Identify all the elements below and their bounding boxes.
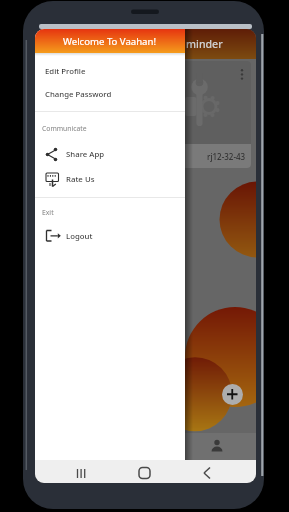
button[interactable] bbox=[202, 434, 232, 458]
staticText: rj12-32-43 bbox=[207, 151, 246, 162]
staticText: Communicate bbox=[42, 124, 87, 133]
staticText: Change Password bbox=[45, 89, 112, 100]
staticText: Welcome To Vaahan! bbox=[63, 35, 157, 48]
staticText: Rate Us bbox=[66, 174, 95, 185]
staticText: Logout bbox=[66, 231, 93, 242]
button[interactable]: Logout bbox=[35, 229, 185, 244]
staticText: minder bbox=[186, 37, 223, 51]
button[interactable] bbox=[222, 384, 243, 405]
button[interactable] bbox=[234, 61, 251, 87]
button[interactable] bbox=[195, 462, 219, 481]
button[interactable]: Change Password bbox=[35, 87, 185, 102]
button[interactable]: Edit Profile bbox=[35, 64, 185, 79]
button[interactable] bbox=[132, 462, 157, 481]
staticText: Share App bbox=[66, 149, 105, 160]
staticText: Exit bbox=[42, 208, 54, 217]
button[interactable]: Rate Us bbox=[35, 172, 185, 187]
button[interactable]: rj12-32-43 bbox=[173, 61, 251, 168]
button[interactable] bbox=[68, 462, 92, 481]
button[interactable]: Share App bbox=[35, 147, 185, 162]
staticText: Edit Profile bbox=[45, 66, 86, 77]
